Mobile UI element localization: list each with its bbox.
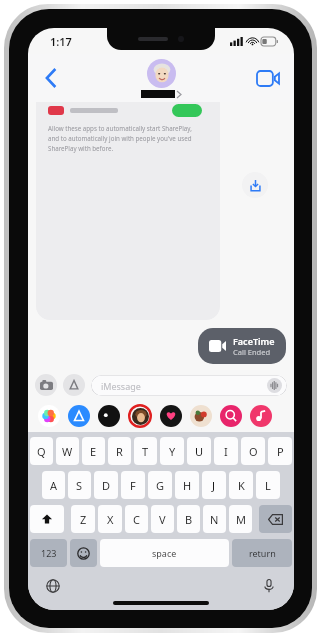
button[interactable]: G: [148, 471, 172, 499]
staticText: C: [133, 512, 140, 527]
button[interactable]: S: [68, 471, 91, 499]
button[interactable]: Audio message: [267, 378, 282, 393]
staticText: SharePlay with before.: [48, 144, 114, 152]
button[interactable]: F: [121, 471, 145, 499]
staticText: and to automatically join with people yo…: [48, 134, 192, 142]
button[interactable]: FaceTime: [198, 328, 286, 364]
staticText: Allow these apps to automatically start …: [48, 124, 192, 132]
button[interactable]: FaceTime video call: [252, 62, 284, 94]
button[interactable]: Fitness: [160, 405, 182, 427]
staticText: U: [195, 444, 204, 459]
button[interactable]: Z: [71, 505, 95, 533]
staticText: FaceTime: [233, 335, 275, 347]
button[interactable]: Back: [36, 63, 66, 93]
button[interactable]: space: [100, 539, 229, 567]
staticText: A: [50, 478, 58, 493]
button[interactable]: E: [82, 437, 105, 465]
staticText: E: [90, 444, 97, 459]
button[interactable]: C: [125, 505, 148, 533]
staticText: T: [142, 444, 149, 459]
staticText: S: [76, 478, 83, 493]
button[interactable]: Save: [242, 172, 268, 198]
staticText: M: [236, 512, 246, 527]
staticText: V: [159, 512, 166, 527]
button[interactable]: N: [203, 505, 226, 533]
button[interactable]: Emoji: [70, 539, 97, 567]
staticText: Y: [169, 444, 176, 459]
staticText: Call Ended: [233, 347, 271, 357]
button[interactable]: B: [177, 505, 200, 533]
button[interactable]: Y: [160, 437, 184, 465]
button[interactable]: iMessage: [91, 375, 287, 396]
button[interactable]: Apps: [63, 374, 85, 396]
button[interactable]: D: [94, 471, 118, 499]
button[interactable]: App Store: [68, 405, 90, 427]
staticText: Q: [37, 444, 46, 459]
staticText: F: [130, 478, 136, 493]
staticText: K: [238, 478, 245, 493]
button[interactable]: K: [229, 471, 253, 499]
button[interactable]: Backspace: [259, 505, 292, 533]
button[interactable]: L: [256, 471, 280, 499]
staticText: J: [212, 478, 216, 493]
button[interactable]: P: [268, 437, 292, 465]
button[interactable]: V: [151, 505, 174, 533]
button[interactable]: Photos: [38, 405, 60, 427]
button[interactable]: T: [134, 437, 157, 465]
button[interactable]: H: [175, 471, 199, 499]
button[interactable]: Music: [250, 405, 272, 427]
staticText: 1:17: [50, 34, 72, 49]
button[interactable]: Camera: [35, 374, 57, 396]
staticText: return: [249, 547, 276, 559]
button[interactable]: Memoji: [132, 408, 149, 425]
button[interactable]: return: [232, 539, 292, 567]
button[interactable]: W: [56, 437, 79, 465]
staticText: space: [152, 547, 177, 559]
staticText: X: [107, 512, 114, 527]
staticText: B: [185, 512, 193, 527]
button[interactable]: Apple Pay: [98, 405, 120, 427]
button[interactable]: R: [108, 437, 131, 465]
staticText: P: [277, 444, 284, 459]
staticText: N: [210, 512, 219, 527]
button[interactable]: I: [214, 437, 238, 465]
button[interactable]: Q: [30, 437, 53, 465]
staticText: R: [116, 444, 123, 459]
staticText: L: [265, 478, 271, 493]
button[interactable]: [141, 59, 181, 98]
button[interactable]: J: [202, 471, 226, 499]
button[interactable]: Shift: [30, 505, 64, 533]
button[interactable]: M: [229, 505, 252, 533]
staticText: G: [156, 478, 165, 493]
button[interactable]: U: [187, 437, 211, 465]
button[interactable]: O: [241, 437, 265, 465]
button[interactable]: Dictation: [258, 575, 280, 597]
staticText: W: [62, 444, 73, 459]
staticText: H: [183, 478, 192, 493]
button[interactable]: Images: [220, 405, 242, 427]
staticText: 123: [41, 547, 57, 559]
staticText: D: [102, 478, 111, 493]
button[interactable]: A: [42, 471, 65, 499]
staticText: iMessage: [101, 380, 141, 392]
button[interactable]: 123: [30, 539, 67, 567]
staticText: O: [249, 444, 258, 459]
staticText: Z: [80, 512, 87, 527]
button[interactable]: X: [98, 505, 122, 533]
button[interactable]: Change keyboard: [42, 575, 64, 597]
button[interactable]: Recent photo: [190, 405, 212, 427]
staticText: I: [224, 444, 228, 459]
